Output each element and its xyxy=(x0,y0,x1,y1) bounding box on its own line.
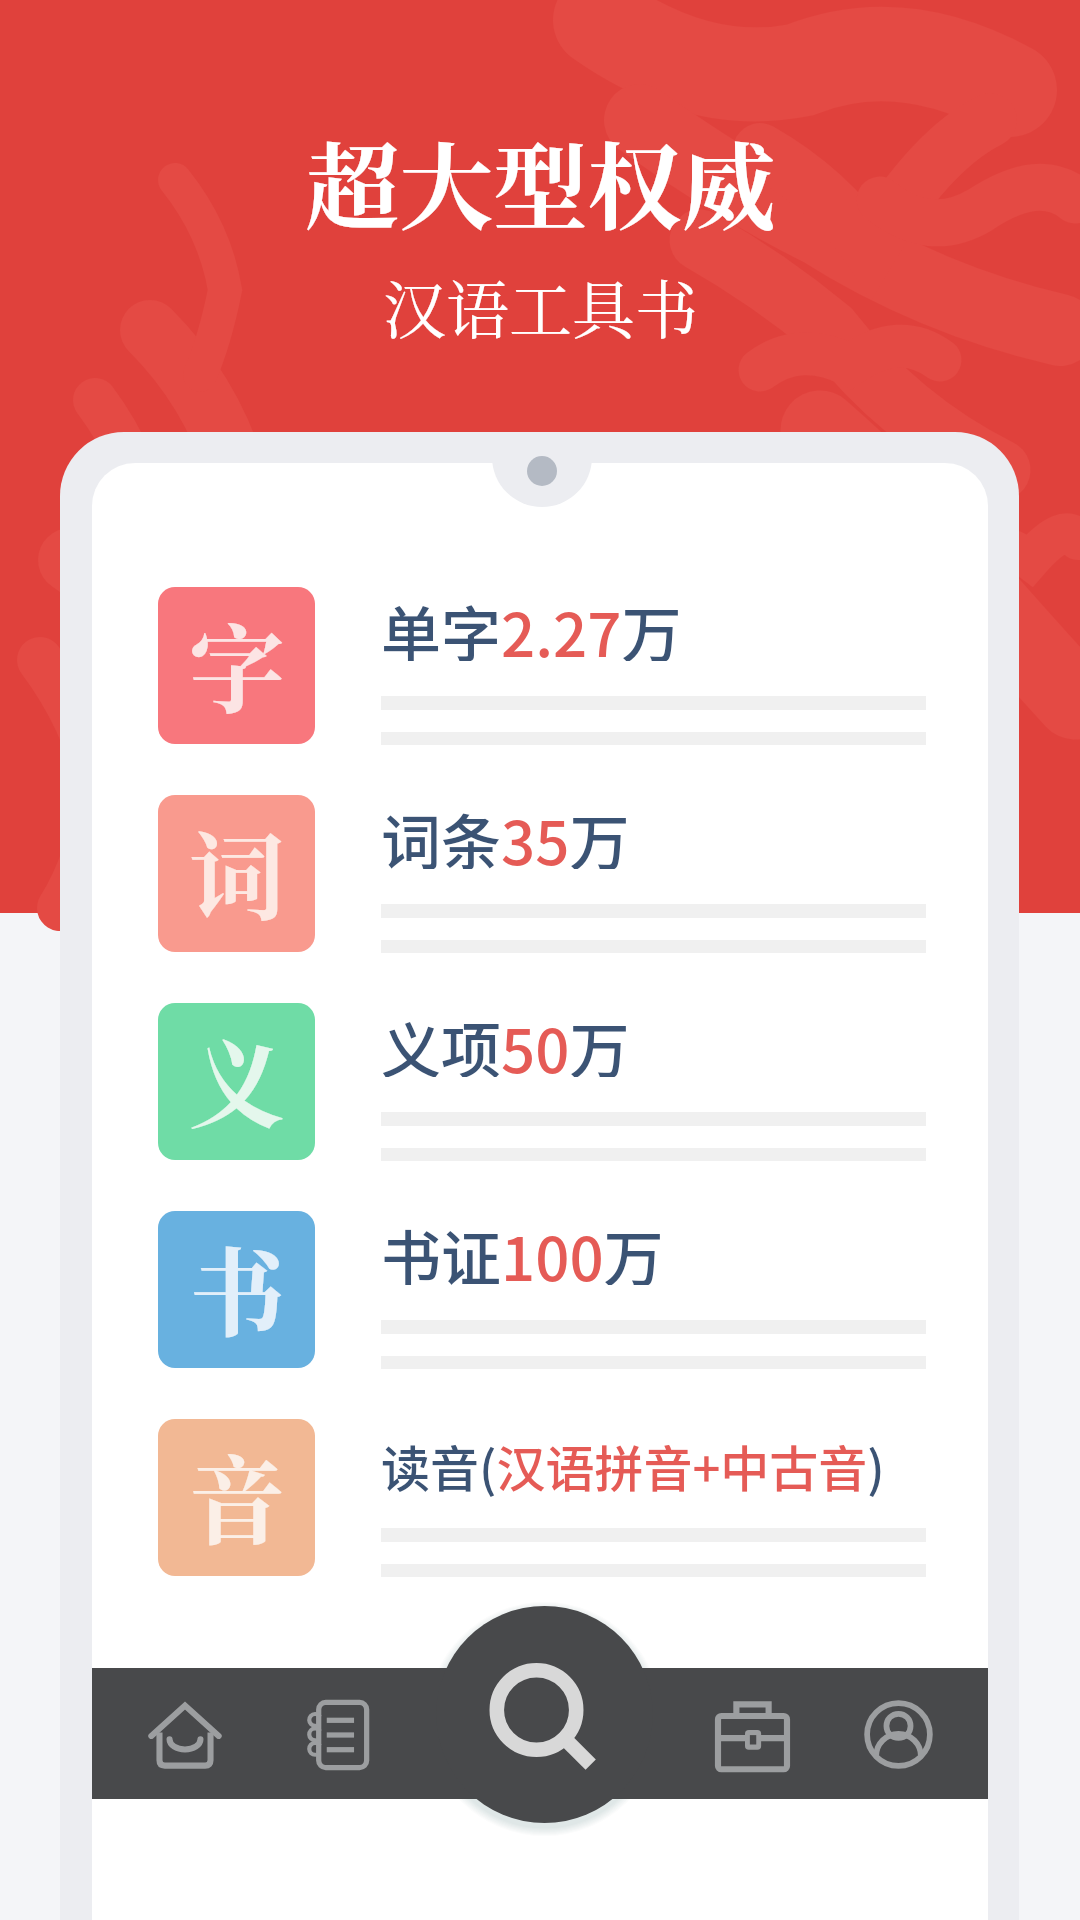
button[interactable]: Profile xyxy=(864,1700,933,1769)
button[interactable]: 音 xyxy=(158,1419,315,1576)
staticText: 义项50万 xyxy=(381,1003,630,1077)
staticText: 书证100万 xyxy=(381,1211,664,1285)
staticText: 汉语工具书 xyxy=(383,260,698,351)
button[interactable]: 字 xyxy=(158,587,315,744)
staticText: 单字2.27万 xyxy=(381,587,682,661)
staticText: 词 xyxy=(189,802,285,940)
staticText: 超大型权威 xyxy=(305,114,776,249)
staticText: 读音(汉语拼音+中古音) xyxy=(381,1430,885,1501)
button[interactable]: Search xyxy=(436,1606,653,1823)
staticText: 义 xyxy=(189,1010,285,1148)
staticText: 字 xyxy=(189,594,285,732)
button[interactable]: Dictionary tools xyxy=(715,1701,790,1776)
button[interactable]: Home xyxy=(148,1700,222,1774)
button[interactable]: 书 xyxy=(158,1211,315,1368)
staticText: 音 xyxy=(189,1426,285,1564)
button[interactable]: 词 xyxy=(158,795,315,952)
button[interactable]: 义 xyxy=(158,1003,315,1160)
staticText: 词条35万 xyxy=(381,795,630,869)
button[interactable]: Notebook xyxy=(304,1700,374,1770)
staticText: 书 xyxy=(189,1218,285,1356)
